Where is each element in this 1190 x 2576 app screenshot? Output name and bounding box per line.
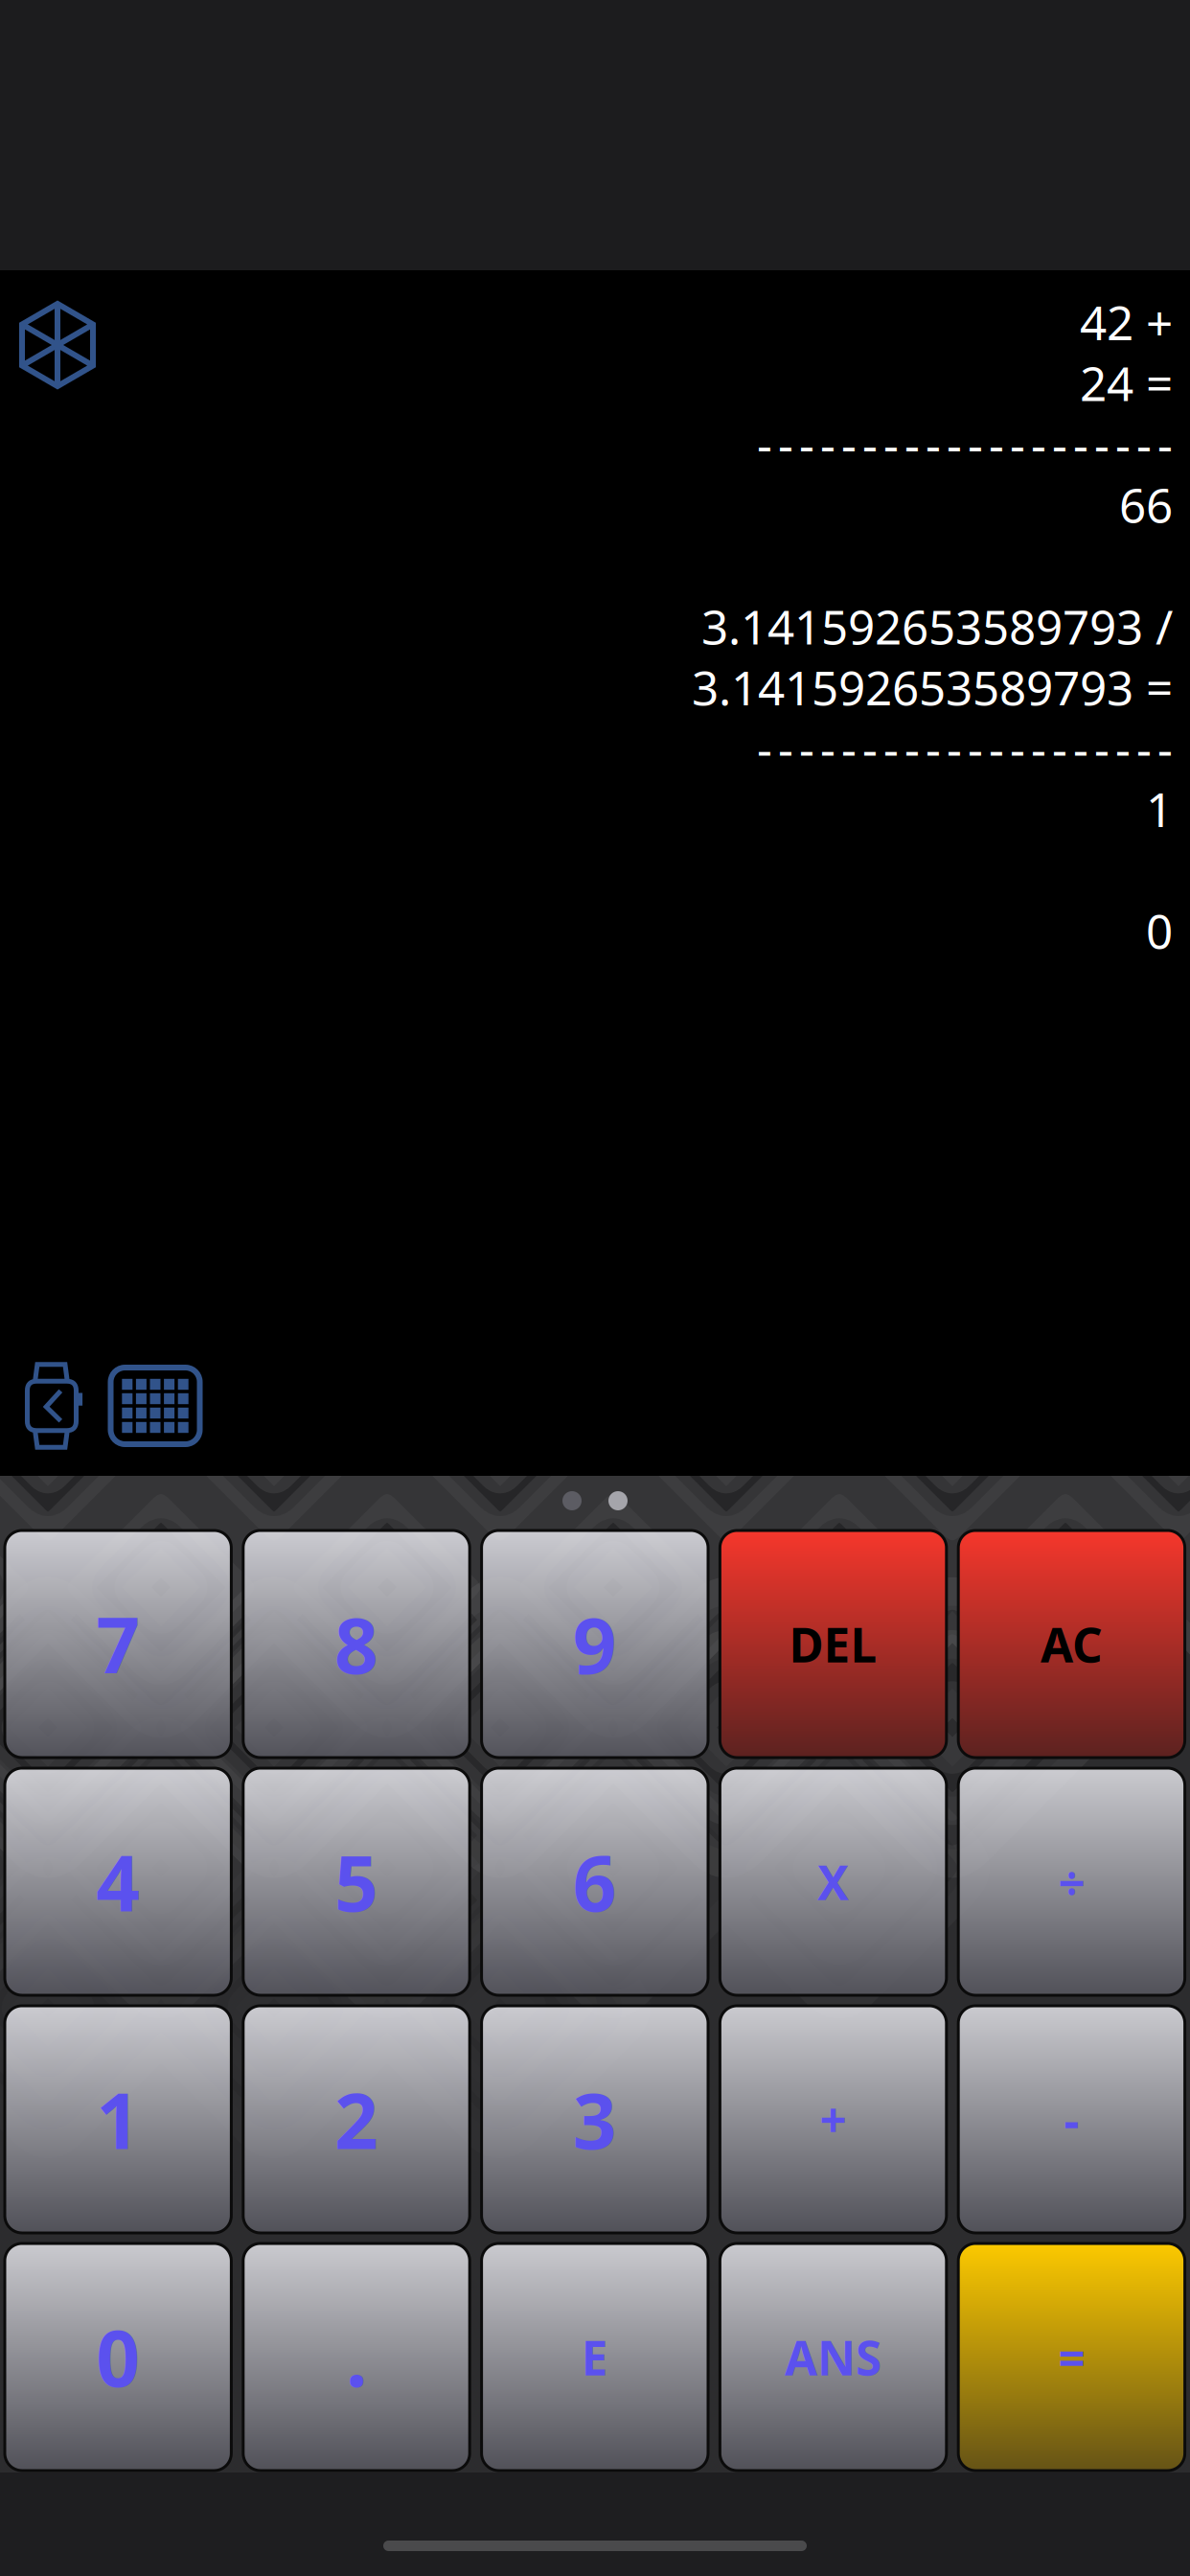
button[interactable]: 2: [243, 2006, 470, 2233]
staticText: 3: [573, 2068, 617, 2170]
staticText: --------------------: [757, 716, 1173, 779]
staticText: ANS: [785, 2326, 882, 2388]
button[interactable]: 3: [482, 2006, 708, 2233]
button[interactable]: 7: [5, 1530, 231, 1758]
staticText: 6: [573, 1831, 617, 1933]
staticText: --------------------: [757, 412, 1173, 475]
button[interactable]: 1: [5, 2006, 231, 2233]
staticText: 66: [1119, 473, 1173, 536]
button[interactable]: multiply: [720, 1768, 946, 1995]
button[interactable]: plus: [720, 2006, 946, 2233]
button[interactable]: =: [958, 2243, 1185, 2471]
staticText: X: [817, 1850, 849, 1913]
button[interactable]: 8: [243, 1530, 470, 1758]
staticText: ÷: [1058, 1850, 1085, 1913]
staticText: 0: [1146, 899, 1173, 962]
button[interactable]: Keypad: [103, 1354, 207, 1458]
staticText: .: [346, 2306, 367, 2408]
button[interactable]: minus: [958, 2006, 1185, 2233]
staticText: 4: [96, 1831, 140, 1933]
staticText: DEL: [789, 1613, 877, 1675]
button[interactable]: 9: [482, 1530, 708, 1758]
staticText: 1: [96, 2068, 140, 2170]
staticText: 8: [334, 1593, 378, 1695]
staticText: +: [820, 2088, 847, 2151]
staticText: -: [1064, 2088, 1079, 2151]
staticText: 42 +: [1080, 290, 1173, 353]
staticText: 3.141592653589793 =: [692, 655, 1173, 718]
button[interactable]: Apple Watch: [0, 1354, 103, 1458]
button[interactable]: ANS: [720, 2243, 946, 2471]
button[interactable]: 4: [5, 1768, 231, 1995]
staticText: =: [1058, 2326, 1085, 2388]
staticText: 0: [96, 2306, 140, 2408]
button[interactable]: 6: [482, 1768, 708, 1995]
staticText: 24 =: [1080, 351, 1173, 414]
button[interactable]: 0: [5, 2243, 231, 2471]
staticText: E: [581, 2326, 608, 2388]
staticText: 9: [573, 1593, 617, 1695]
staticText: 5: [334, 1831, 378, 1933]
button[interactable]: E: [482, 2243, 708, 2471]
staticText: 2: [334, 2068, 378, 2170]
button[interactable]: 5: [243, 1768, 470, 1995]
button[interactable]: DEL: [720, 1530, 946, 1758]
staticText: AC: [1040, 1613, 1103, 1675]
staticText: 3.141592653589793 /: [701, 595, 1173, 657]
staticText: 1: [1146, 777, 1173, 840]
button[interactable]: divide: [958, 1768, 1185, 1995]
staticText: 7: [96, 1593, 140, 1695]
button[interactable]: .: [243, 2243, 470, 2471]
button[interactable]: AC: [958, 1530, 1185, 1758]
